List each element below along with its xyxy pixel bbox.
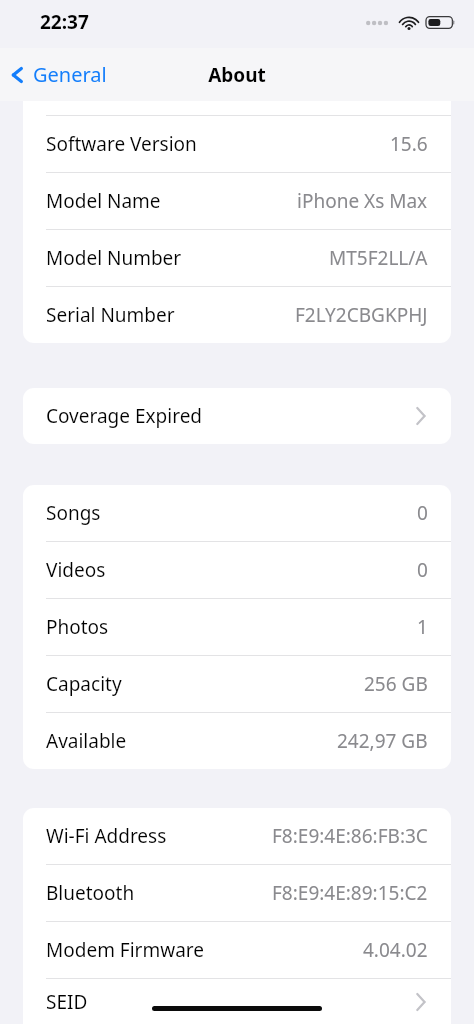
staticText: Model Name <box>46 188 161 214</box>
staticText: 0 <box>417 500 428 526</box>
staticText: Serial Number <box>46 302 175 328</box>
staticText: Wi-Fi Address <box>46 823 167 849</box>
button[interactable]: Software Version <box>23 116 451 172</box>
staticText: Songs <box>46 500 101 526</box>
button[interactable]: Model Name <box>23 173 451 229</box>
other: Back <box>12 64 25 86</box>
staticText: Available <box>46 728 127 754</box>
staticText: 4.04.02 <box>363 937 428 963</box>
staticText: 15.6 <box>390 131 428 157</box>
button[interactable]: Modem Firmware <box>23 922 451 978</box>
staticText: Software Version <box>46 131 197 157</box>
staticText: SEID <box>46 989 88 1015</box>
staticText: 0 <box>417 557 428 583</box>
staticText: iPhone Xs Max <box>297 188 428 214</box>
button[interactable]: SEID <box>23 979 451 1024</box>
staticText: Photos <box>46 614 109 640</box>
staticText: 22:37 <box>40 9 89 35</box>
staticText: F8:E9:4E:89:15:C2 <box>272 880 428 906</box>
staticText: 1 <box>417 614 428 640</box>
staticText: Model Number <box>46 245 182 271</box>
button[interactable]: Wi-Fi Address <box>23 808 451 864</box>
button[interactable]: Back <box>0 55 117 94</box>
button[interactable]: Model Number <box>23 230 451 286</box>
staticText: 256 GB <box>364 671 428 697</box>
button[interactable]: Available <box>23 713 451 769</box>
staticText: F8:E9:4E:86:FB:3C <box>272 823 428 849</box>
staticText: About <box>208 62 266 88</box>
button[interactable]: Serial Number <box>23 287 451 343</box>
staticText: General <box>33 61 107 88</box>
staticText: Modem Firmware <box>46 937 204 963</box>
staticText: 242,97 GB <box>337 728 428 754</box>
staticText: Coverage Expired <box>46 403 203 429</box>
button[interactable]: Bluetooth <box>23 865 451 921</box>
staticText: Videos <box>46 557 106 583</box>
button[interactable]: Videos <box>23 542 451 598</box>
button[interactable]: Coverage Expired <box>23 388 451 444</box>
staticText: Bluetooth <box>46 880 135 906</box>
staticText: F2LY2CBGKPHJ <box>295 302 428 328</box>
button[interactable]: Photos <box>23 599 451 655</box>
button[interactable]: Songs <box>23 485 451 541</box>
button[interactable]: Capacity <box>23 656 451 712</box>
staticText: Capacity <box>46 671 122 697</box>
staticText: MT5F2LL/A <box>329 245 428 271</box>
